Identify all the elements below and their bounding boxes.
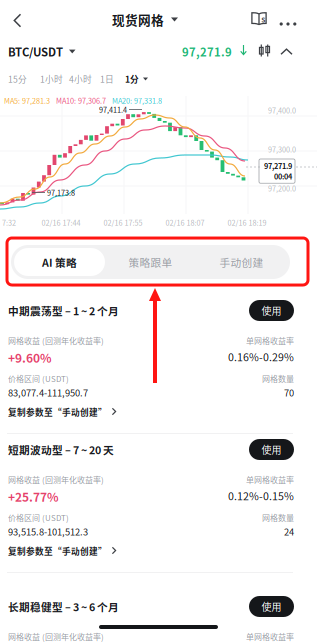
staticText: 1日: [100, 73, 114, 85]
staticText: 24: [284, 525, 294, 538]
staticText: 97,173.8: [47, 187, 75, 198]
staticText: 手动创建: [219, 254, 263, 270]
button[interactable]: 手动创建: [196, 248, 287, 276]
staticText: 15分: [8, 73, 27, 85]
button[interactable]: 1分: [125, 73, 148, 85]
staticText: 单网格收益率: [246, 631, 294, 642]
button[interactable]: Collapse chart: [280, 48, 293, 56]
staticText: 7:32: [2, 217, 16, 228]
button[interactable]: More options: [276, 17, 300, 31]
button[interactable]: 复制参数至“手动创建”: [8, 406, 117, 418]
button[interactable]: 现货网格: [112, 11, 178, 28]
button[interactable]: Chart style: [258, 44, 271, 57]
button[interactable]: 1小时: [40, 73, 63, 85]
staticText: +9.60%: [8, 349, 52, 366]
staticText: 83,077.4-111,950.7: [8, 386, 88, 399]
button[interactable]: 4小时: [69, 73, 92, 85]
staticText: 复制参数至“手动创建”: [8, 406, 107, 418]
staticText: 00:04: [274, 171, 292, 182]
staticText: 02/16 17:44: [41, 217, 80, 228]
staticText: 4小时: [69, 73, 92, 85]
button[interactable]: Strategy guide: [251, 11, 267, 26]
staticText: MA5: 97,281.3: [4, 95, 50, 106]
staticText: 70: [284, 386, 294, 399]
staticText: 使用: [261, 442, 281, 457]
button[interactable]: Back: [9, 13, 25, 28]
staticText: 1分: [125, 73, 139, 85]
staticText: 97,271.9: [182, 43, 232, 60]
staticText: 97,200.0: [268, 183, 296, 194]
staticText: 97,400.0: [268, 105, 296, 116]
staticText: 网格数量: [262, 373, 294, 384]
staticText: 93,515.8-101,512.3: [8, 525, 88, 538]
button[interactable]: 1日: [100, 73, 114, 85]
staticText: S: [261, 15, 265, 24]
staticText: 现货网格: [112, 10, 164, 29]
staticText: +25.77%: [8, 488, 59, 505]
button[interactable]: 复制参数至“手动创建”: [8, 545, 117, 557]
staticText: 网格收益 (回测年化收益率): [8, 631, 104, 642]
staticText: 价格区间 (USDT): [8, 373, 69, 384]
staticText: 使用: [261, 303, 281, 318]
button[interactable]: 使用: [249, 596, 294, 617]
staticText: AI 策略: [42, 254, 77, 270]
staticText: 97,300.0: [268, 144, 296, 155]
staticText: 网格数量: [262, 512, 294, 523]
staticText: BTC/USDT: [8, 43, 63, 60]
staticText: 网格收益 (回测年化收益率): [8, 335, 104, 346]
staticText: 0.16%-0.29%: [228, 349, 294, 364]
staticText: 02/16 18:07: [165, 217, 204, 228]
staticText: 02/16 18:19: [227, 217, 266, 228]
staticText: 复制参数至“手动创建”: [8, 545, 107, 557]
staticText: 1小时: [40, 73, 63, 85]
staticText: 短期波动型 – 7 ~ 20 天: [8, 442, 114, 457]
staticText: 价格区间 (USDT): [8, 512, 69, 523]
button[interactable]: BTC/USDT: [8, 44, 75, 59]
button[interactable]: 使用: [249, 300, 294, 321]
button[interactable]: 策略跟单: [105, 248, 196, 276]
staticText: 网格收益 (回测年化收益率): [8, 474, 104, 485]
staticText: 单网格收益率: [246, 474, 294, 485]
button[interactable]: 使用: [249, 439, 294, 460]
staticText: 策略跟单: [128, 254, 172, 270]
staticText: 0.12%-0.15%: [228, 488, 294, 503]
staticText: MA10: 97,306.7: [56, 95, 106, 106]
staticText: 97,271.9: [264, 160, 292, 171]
staticText: 97,411.4: [99, 104, 127, 115]
staticText: MA20: 97,331.8: [112, 95, 162, 106]
staticText: 02/16 17:55: [103, 217, 142, 228]
staticText: 使用: [261, 599, 281, 614]
button[interactable]: AI 策略: [14, 248, 105, 276]
staticText: 长期稳健型 – 3 ~ 6 个月: [8, 599, 119, 614]
staticText: 单网格收益率: [246, 335, 294, 346]
staticText: 中期震荡型 – 1 ~ 2 个月: [8, 303, 119, 318]
button[interactable]: 15分: [8, 73, 27, 85]
